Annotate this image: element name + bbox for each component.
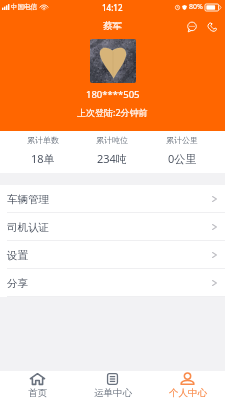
- staticText: 180****505: [86, 88, 140, 101]
- button[interactable]: 车辆管理: [0, 185, 225, 212]
- button[interactable]: Avatar: [90, 39, 136, 83]
- button[interactable]: 累计单数: [8, 131, 77, 166]
- button[interactable]: Call: [204, 19, 220, 35]
- button[interactable]: 个人中心: [150, 371, 225, 400]
- button[interactable]: 分享: [0, 269, 225, 296]
- staticText: 首页: [28, 387, 47, 399]
- staticText: 司机认证: [7, 221, 49, 234]
- button[interactable]: Messages: [184, 19, 200, 35]
- button[interactable]: 首页: [0, 371, 75, 400]
- staticText: 运单中心: [94, 387, 132, 399]
- staticText: 累计公里: [166, 135, 198, 145]
- button[interactable]: 设置: [0, 241, 225, 268]
- staticText: 分享: [7, 277, 28, 290]
- staticText: 上次登陆:2分钟前: [77, 106, 148, 118]
- button[interactable]: 运单中心: [75, 371, 150, 400]
- staticText: 累计吨位: [96, 135, 128, 145]
- staticText: 18单: [31, 151, 55, 166]
- staticText: 个人中心: [169, 387, 207, 399]
- staticText: 中国电信: [11, 3, 37, 11]
- staticText: 设置: [7, 249, 28, 262]
- staticText: 234吨: [97, 151, 127, 166]
- staticText: 蔡军: [103, 20, 122, 32]
- button[interactable]: 司机认证: [0, 213, 225, 240]
- button[interactable]: 累计吨位: [77, 131, 147, 166]
- staticText: 0公里: [168, 151, 197, 166]
- staticText: 车辆管理: [7, 193, 49, 206]
- button[interactable]: 累计公里: [147, 131, 217, 166]
- staticText: 14:12: [102, 2, 123, 13]
- staticText: 80%: [189, 2, 203, 12]
- staticText: 累计单数: [27, 135, 59, 145]
